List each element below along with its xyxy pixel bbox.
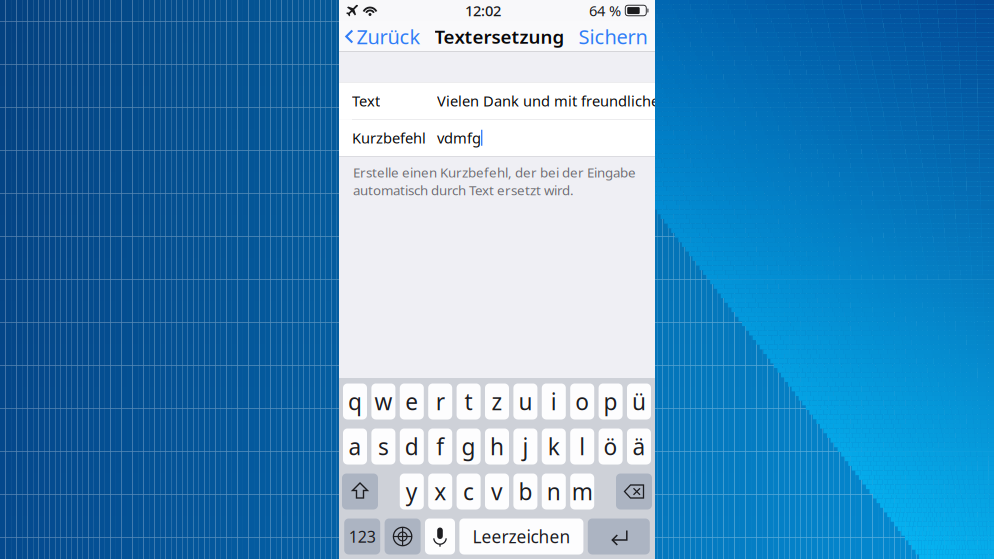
- staticText: w: [374, 386, 392, 416]
- button[interactable]: o: [570, 383, 594, 419]
- button[interactable]: r: [428, 383, 452, 419]
- staticText: ü: [632, 386, 646, 416]
- staticText: a: [348, 431, 361, 461]
- staticText: b: [518, 476, 532, 506]
- button[interactable]: ü: [627, 383, 651, 419]
- button[interactable]: Return: [588, 518, 650, 554]
- button[interactable]: u: [513, 383, 537, 419]
- staticText: n: [547, 476, 561, 506]
- staticText: x: [434, 476, 446, 506]
- staticText: o: [575, 386, 589, 416]
- button[interactable]: 123: [344, 518, 380, 554]
- button[interactable]: q: [343, 383, 367, 419]
- button[interactable]: Zurück: [337, 21, 426, 52]
- button[interactable]: Next keyboard: [385, 518, 421, 554]
- staticText: Vielen Dank und mit freundlichen Gr…: [437, 91, 699, 110]
- button[interactable]: Leerzeichen: [459, 518, 583, 554]
- button[interactable]: ö: [599, 428, 623, 464]
- button[interactable]: x: [428, 473, 452, 509]
- button[interactable]: s: [371, 428, 395, 464]
- button[interactable]: Shift: [342, 473, 378, 509]
- button[interactable]: d: [400, 428, 424, 464]
- button[interactable]: y: [400, 473, 424, 509]
- staticText: t: [465, 386, 473, 416]
- staticText: m: [572, 476, 593, 506]
- button[interactable]: a: [343, 428, 367, 464]
- staticText: vdmfg: [437, 128, 481, 147]
- staticText: 123: [349, 526, 376, 547]
- staticText: Kurzbefehl: [352, 128, 426, 147]
- button[interactable]: z: [485, 383, 509, 419]
- staticText: 12:02: [465, 1, 501, 20]
- staticText: r: [436, 386, 445, 416]
- button[interactable]: b: [513, 473, 537, 509]
- staticText: i: [551, 386, 557, 416]
- button[interactable]: v: [485, 473, 509, 509]
- staticText: Sichern: [578, 23, 647, 50]
- staticText: Zurück: [356, 23, 420, 50]
- button[interactable]: l: [570, 428, 594, 464]
- staticText: p: [604, 386, 618, 416]
- button[interactable]: Text: [339, 82, 655, 119]
- staticText: g: [462, 431, 476, 461]
- staticText: q: [348, 386, 362, 416]
- staticText: Text: [352, 91, 380, 110]
- staticText: f: [436, 431, 444, 461]
- staticText: l: [579, 431, 585, 461]
- button[interactable]: e: [400, 383, 424, 419]
- button[interactable]: ä: [627, 428, 651, 464]
- button[interactable]: f: [428, 428, 452, 464]
- staticText: s: [378, 431, 389, 461]
- staticText: u: [518, 386, 532, 416]
- button[interactable]: n: [542, 473, 566, 509]
- button[interactable]: t: [457, 383, 481, 419]
- staticText: y: [406, 476, 418, 506]
- button[interactable]: j: [513, 428, 537, 464]
- button[interactable]: k: [542, 428, 566, 464]
- button[interactable]: Sichern: [572, 21, 656, 52]
- button[interactable]: Delete: [616, 473, 652, 509]
- staticText: j: [522, 431, 528, 461]
- button[interactable]: Dictation: [425, 518, 455, 554]
- staticText: 64 %: [589, 1, 621, 20]
- staticText: e: [405, 386, 418, 416]
- button[interactable]: m: [570, 473, 594, 509]
- button[interactable]: i: [542, 383, 566, 419]
- staticText: v: [491, 476, 503, 506]
- button[interactable]: h: [485, 428, 509, 464]
- staticText: k: [548, 431, 560, 461]
- staticText: Erstelle einen Kurzbefehl, der bei der E…: [353, 163, 636, 199]
- staticText: d: [405, 431, 419, 461]
- button[interactable]: g: [457, 428, 481, 464]
- button[interactable]: Kurzbefehl: [339, 119, 655, 156]
- staticText: ä: [632, 431, 645, 461]
- button[interactable]: c: [457, 473, 481, 509]
- button[interactable]: w: [371, 383, 395, 419]
- staticText: Leerzeichen: [472, 525, 570, 548]
- staticText: c: [463, 476, 474, 506]
- staticText: ö: [604, 431, 618, 461]
- staticText: h: [490, 431, 504, 461]
- staticText: z: [491, 386, 502, 416]
- staticText: Textersetzung: [434, 24, 564, 49]
- button[interactable]: p: [599, 383, 623, 419]
